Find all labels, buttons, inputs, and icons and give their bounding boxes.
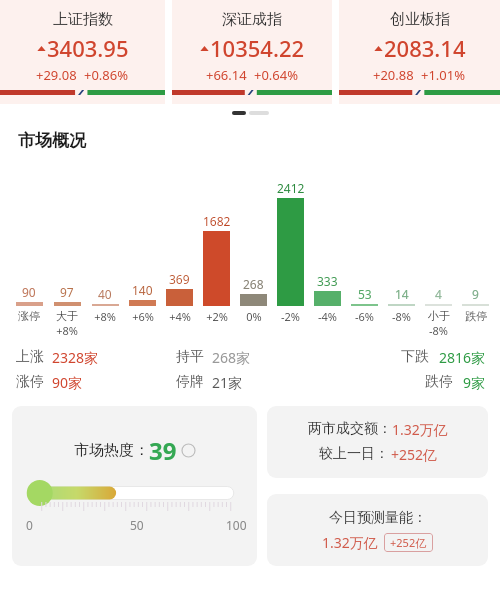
- staticText: -6%: [355, 309, 374, 324]
- staticText: 10354.22: [210, 33, 305, 63]
- button[interactable]: 创业板指: [339, 0, 500, 104]
- staticText: +8%: [94, 309, 116, 324]
- staticText: +0.86%: [84, 66, 129, 84]
- staticText: 2083.14: [384, 33, 466, 63]
- button[interactable]: 上证指数: [0, 0, 165, 104]
- staticText: 1682: [203, 213, 231, 229]
- staticText: 9: [472, 286, 479, 302]
- staticText: 1.32万亿: [322, 533, 378, 552]
- staticText: 1.32万亿: [392, 420, 448, 439]
- staticText: 较上一日：: [319, 445, 389, 463]
- staticText: 市场概况: [18, 130, 86, 151]
- staticText: +252亿: [391, 445, 438, 464]
- staticText: 两市成交额：: [308, 420, 392, 438]
- staticText: 100: [226, 517, 247, 533]
- staticText: +1.01%: [421, 66, 466, 84]
- staticText: +29.08: [36, 66, 77, 84]
- staticText: 14: [395, 286, 409, 302]
- staticText: +66.14: [206, 66, 247, 84]
- staticText: 21家: [212, 373, 243, 392]
- staticText: 涨停: [18, 309, 40, 323]
- staticText: 创业板指: [390, 10, 450, 29]
- staticText: +6%: [132, 309, 154, 324]
- staticText: 90家: [52, 373, 83, 392]
- staticText: 停牌: [176, 373, 204, 391]
- staticText: 跌停: [425, 373, 453, 391]
- staticText: +252亿: [390, 535, 427, 550]
- staticText: -2%: [281, 309, 300, 324]
- staticText: 40: [98, 286, 112, 302]
- staticText: 持平: [176, 348, 204, 366]
- staticText: 333: [317, 273, 338, 289]
- staticText: 39: [149, 434, 177, 467]
- staticText: -8%: [392, 309, 411, 324]
- staticText: 涨停: [16, 373, 44, 391]
- staticText: 小于: [428, 309, 450, 323]
- staticText: 上涨: [16, 348, 44, 366]
- button[interactable]: 两市成交额：: [267, 406, 488, 478]
- staticText: 0: [26, 517, 33, 533]
- staticText: +8%: [56, 323, 78, 338]
- staticText: 369: [169, 271, 190, 287]
- staticText: 下跌: [401, 348, 429, 366]
- staticText: 2816家: [439, 348, 486, 367]
- staticText: 4: [435, 286, 442, 302]
- staticText: 跌停: [465, 309, 487, 323]
- staticText: +4%: [169, 309, 191, 324]
- staticText: 深证成指: [222, 10, 282, 29]
- staticText: +0.64%: [254, 66, 299, 84]
- staticText: 97: [60, 284, 74, 300]
- staticText: 53: [358, 286, 372, 302]
- staticText: 268家: [212, 348, 251, 367]
- button[interactable]: 今日预测量能：: [267, 494, 488, 566]
- staticText: 上证指数: [53, 10, 113, 29]
- staticText: 2328家: [52, 348, 99, 367]
- staticText: -8%: [429, 323, 448, 338]
- staticText: 0%: [246, 309, 262, 324]
- staticText: 3403.95: [47, 33, 129, 63]
- staticText: 268: [243, 276, 264, 292]
- staticText: 大于: [56, 309, 78, 323]
- staticText: 90: [22, 284, 36, 300]
- staticText: 市场热度：: [74, 441, 149, 460]
- staticText: -4%: [318, 309, 337, 324]
- staticText: 140: [132, 282, 153, 298]
- staticText: +20.88: [373, 66, 414, 84]
- staticText: 2412: [277, 180, 305, 196]
- other: 帮助: [182, 444, 195, 457]
- staticText: 今日预测量能：: [329, 509, 427, 527]
- staticText: 9家: [463, 373, 486, 392]
- button[interactable]: 市场热度：: [12, 406, 257, 566]
- staticText: +2%: [206, 309, 228, 324]
- staticText: 50: [130, 517, 144, 533]
- button[interactable]: 深证成指: [172, 0, 332, 104]
